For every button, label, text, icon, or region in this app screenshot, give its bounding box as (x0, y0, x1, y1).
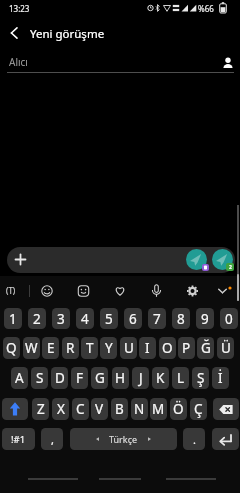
button[interactable]: 0 (220, 308, 238, 329)
button[interactable]: F (71, 367, 88, 389)
staticText: !#1 (11, 433, 26, 446)
button[interactable]: A (11, 367, 28, 389)
button[interactable]: M (150, 398, 167, 420)
staticText: Yeni görüşme (30, 26, 105, 42)
button[interactable]: 9 (196, 308, 214, 329)
button[interactable]: Ç (190, 398, 207, 420)
button[interactable]: Ş (192, 367, 209, 389)
staticText: V (95, 400, 104, 418)
staticText: S (36, 369, 44, 387)
staticText: O (162, 339, 173, 357)
staticText: M (152, 400, 165, 418)
staticText: 0 (225, 310, 233, 328)
staticText: 6 (129, 310, 137, 328)
button[interactable]: R (62, 337, 79, 359)
staticText: W (25, 339, 38, 357)
button[interactable]: (T) (6, 285, 16, 296)
staticText: (T) (6, 285, 16, 296)
staticText: İ (218, 369, 223, 387)
staticText: D (55, 369, 65, 387)
button[interactable]: N (131, 398, 148, 420)
button[interactable]: T (81, 337, 98, 359)
staticText: 5 (105, 310, 113, 328)
button[interactable]: Ö (170, 398, 187, 420)
staticText: , (51, 432, 54, 447)
button[interactable]: Z (32, 398, 49, 420)
staticText: K (156, 369, 165, 387)
button[interactable] (8, 26, 22, 40)
button[interactable]: H (112, 367, 129, 389)
button[interactable] (212, 249, 233, 270)
button[interactable]: Türkçe (70, 428, 177, 450)
staticText: 4 (81, 310, 89, 328)
staticText: R (66, 339, 75, 357)
button[interactable]: 8 (172, 308, 190, 329)
staticText: H (115, 369, 126, 387)
button[interactable]: I (139, 337, 156, 359)
button[interactable]: G (91, 367, 108, 389)
staticText: 9 (201, 310, 209, 328)
button[interactable]: J (132, 367, 149, 389)
staticText: 8 (177, 310, 185, 328)
button[interactable]: Q (3, 337, 20, 359)
button[interactable]: B (111, 398, 128, 420)
button[interactable]: C (72, 398, 89, 420)
button[interactable]: E (42, 337, 59, 359)
button[interactable]: V (91, 398, 108, 420)
button[interactable]: X (52, 398, 69, 420)
staticText: Türkçe (109, 433, 138, 445)
button[interactable]: 7 (148, 308, 166, 329)
staticText: 3 (57, 310, 65, 328)
staticText: U (124, 339, 134, 357)
button[interactable]: Ğ (197, 337, 214, 359)
staticText: I (145, 339, 150, 357)
staticText: 7 (153, 310, 161, 328)
staticText: F (76, 369, 84, 387)
button[interactable] (221, 56, 235, 70)
staticText: Alıcı (9, 55, 28, 69)
button[interactable]: W (23, 337, 40, 359)
button[interactable]: . (183, 428, 205, 450)
button[interactable] (14, 253, 27, 266)
staticText: T (86, 339, 94, 357)
staticText: Y (105, 339, 113, 357)
button[interactable]: P (178, 337, 195, 359)
button[interactable]: !#1 (2, 428, 35, 450)
button[interactable]: D (51, 367, 68, 389)
staticText: P (182, 339, 191, 357)
button[interactable]: 5 (100, 308, 118, 329)
button[interactable]: Y (100, 337, 117, 359)
button[interactable]: L (172, 367, 189, 389)
button[interactable]: 4 (76, 308, 94, 329)
button[interactable] (186, 249, 207, 270)
button[interactable]: 1 (4, 308, 22, 329)
staticText: Ğ (201, 339, 211, 357)
staticText: %66 (198, 3, 214, 14)
button[interactable]: 3 (52, 308, 70, 329)
button[interactable]: 6 (124, 308, 142, 329)
staticText: G (95, 369, 105, 387)
button[interactable] (212, 428, 239, 450)
button[interactable]: S (31, 367, 48, 389)
staticText: C (76, 400, 85, 418)
button[interactable]: 2 (28, 308, 46, 329)
staticText: 1 (9, 310, 17, 328)
staticText: 2 (229, 264, 232, 271)
button[interactable]: U (120, 337, 137, 359)
staticText: Ş (197, 369, 205, 387)
button[interactable]: O (159, 337, 176, 359)
button[interactable]: K (152, 367, 169, 389)
staticText: B (115, 400, 124, 418)
staticText: 13:23 (9, 3, 30, 14)
button[interactable] (213, 398, 239, 420)
staticText: Ü (221, 339, 231, 357)
button[interactable] (2, 398, 28, 420)
staticText: Ç (194, 400, 203, 418)
button[interactable]: Ü (217, 337, 234, 359)
button[interactable]: , (41, 428, 63, 450)
button[interactable]: İ (212, 367, 229, 389)
button[interactable] (7, 247, 235, 273)
